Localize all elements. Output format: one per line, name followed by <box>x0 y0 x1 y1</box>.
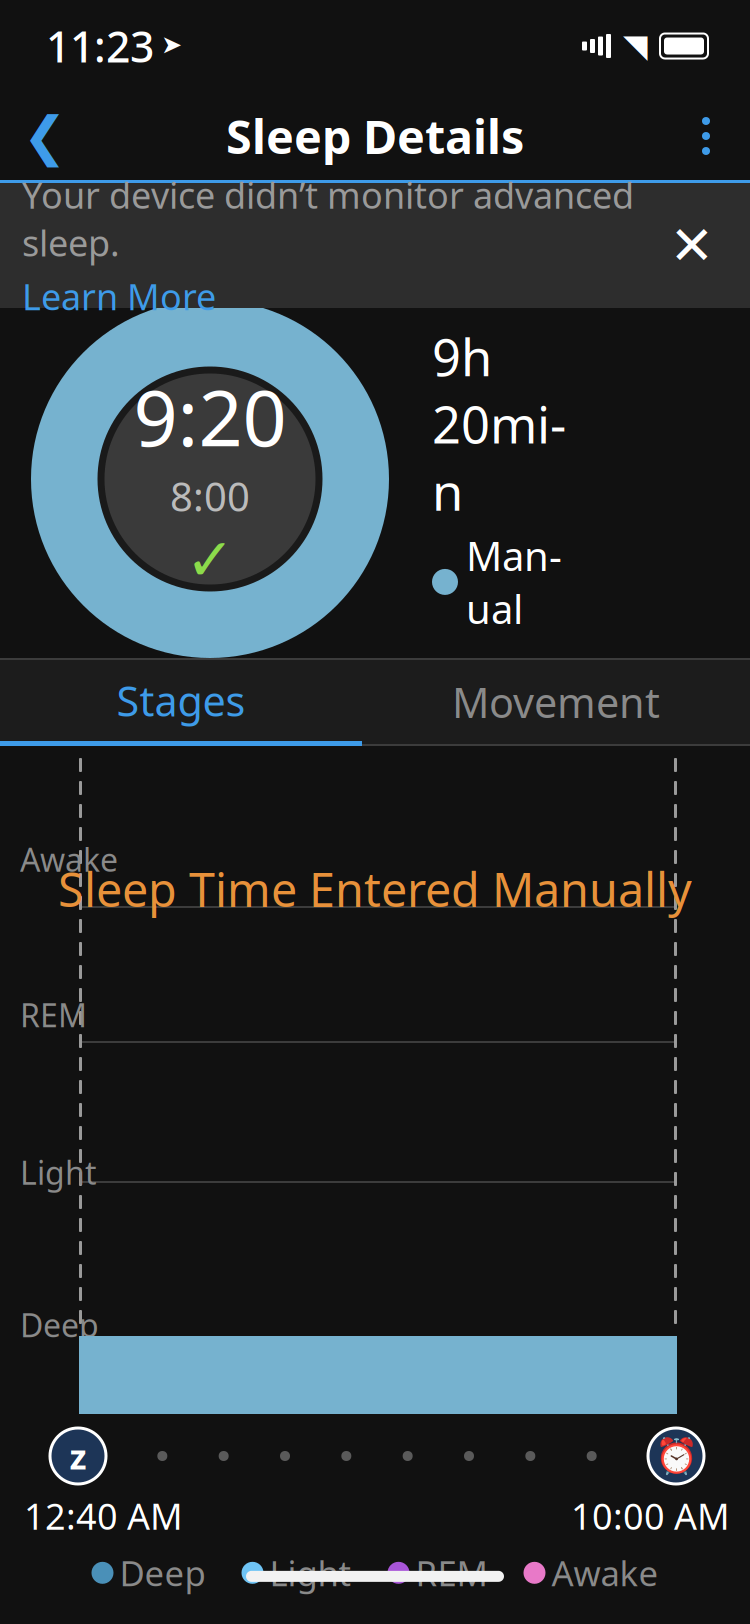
staticText: Manual <box>466 529 562 635</box>
staticText: REM <box>20 993 87 1036</box>
staticText: Sleep Details <box>226 105 524 167</box>
staticText: REM <box>415 1550 487 1596</box>
staticText: Movement <box>452 675 660 729</box>
button[interactable]: Movement <box>362 660 750 746</box>
button[interactable]: Back <box>0 92 90 180</box>
staticText: Light <box>20 1151 97 1193</box>
button[interactable]: Stages <box>0 660 362 746</box>
staticText: 9h 20min <box>432 323 566 525</box>
button[interactable]: More options <box>662 92 750 180</box>
staticText: Awake <box>20 838 118 880</box>
button[interactable]: Dismiss <box>652 205 732 285</box>
staticText: Learn More <box>22 272 216 320</box>
staticText: Awake <box>551 1550 658 1596</box>
staticText: 10:00 AM <box>571 1492 730 1540</box>
staticText: Light <box>269 1550 351 1596</box>
staticText: 8:00 <box>170 469 250 523</box>
staticText: ✕ <box>669 215 714 276</box>
staticText: Stages <box>116 673 245 728</box>
staticText: Deep <box>119 1550 205 1596</box>
staticText: 12:40 AM <box>24 1492 183 1540</box>
staticText: ⏰ <box>654 1436 697 1476</box>
staticText: 9:20 <box>133 365 286 467</box>
button[interactable]: Learn More <box>22 272 652 320</box>
staticText: z <box>69 1433 86 1479</box>
staticText: Your device didn’t monitor advanced slee… <box>22 171 634 266</box>
staticText: Deep <box>20 1303 99 1346</box>
staticText: ◥ <box>623 28 648 64</box>
staticText: ❮ <box>22 106 67 166</box>
staticText: ✓ <box>185 527 234 593</box>
staticText: ➤ <box>161 30 182 59</box>
staticText: 11:23 <box>46 18 154 74</box>
staticText: Sleep Time Entered Manually <box>58 858 692 920</box>
